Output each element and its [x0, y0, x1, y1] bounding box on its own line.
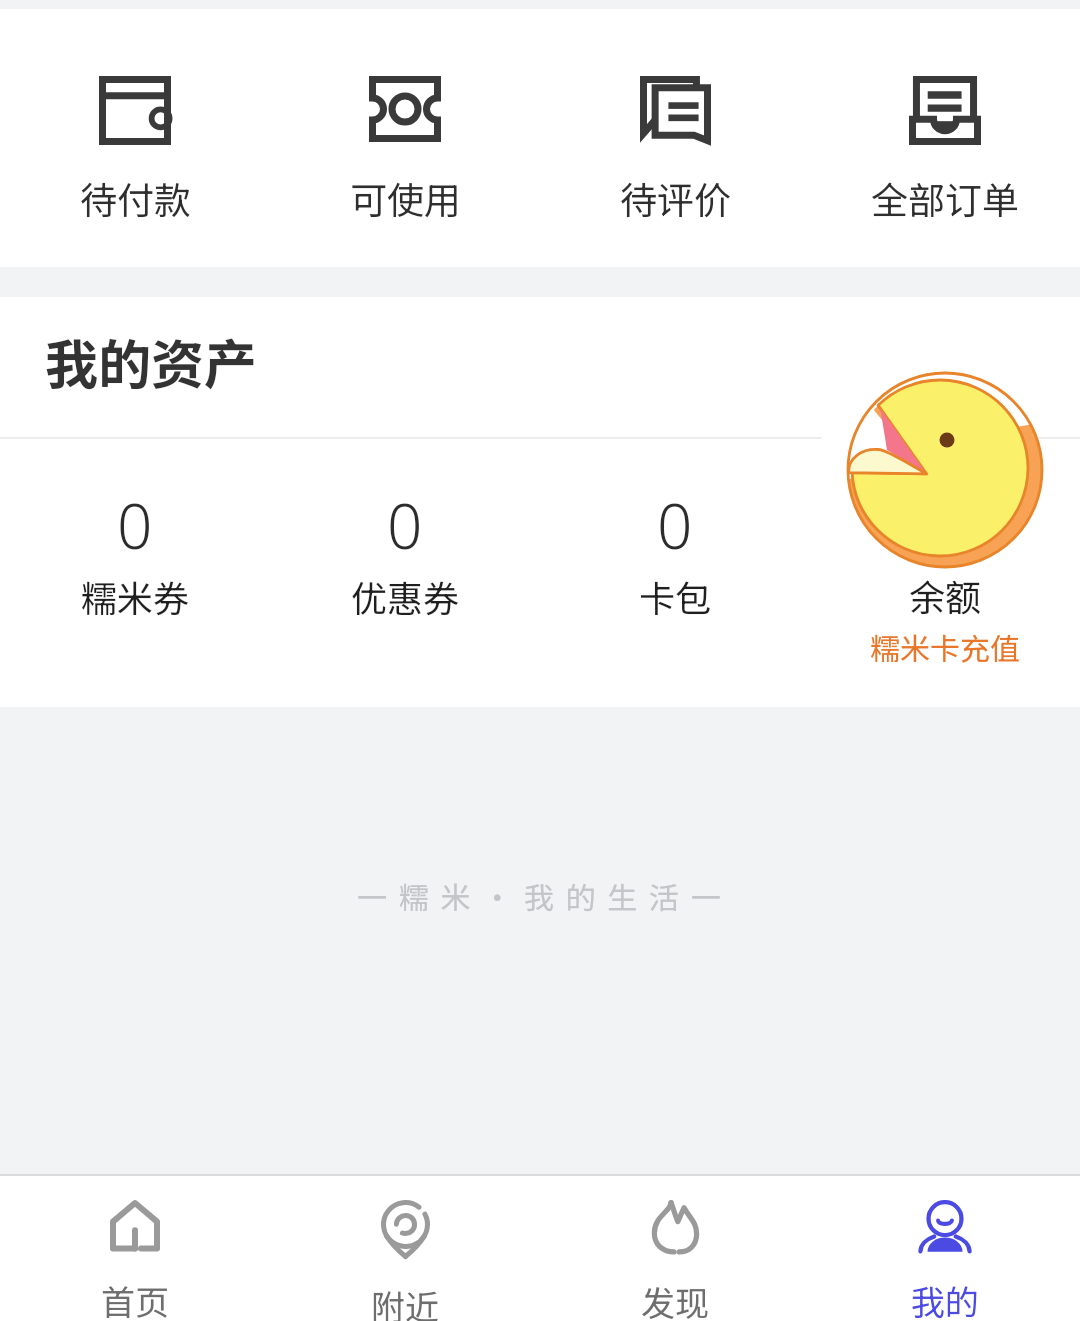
- other: 发现: [652, 1200, 699, 1255]
- button[interactable]: 余额: [810, 439, 1080, 707]
- staticText: 发现: [641, 1277, 709, 1321]
- staticText: 全部订单: [871, 171, 1019, 225]
- button[interactable]: 可使用: [270, 9, 540, 267]
- other: 首页: [110, 1200, 160, 1254]
- staticText: 首页: [101, 1276, 169, 1321]
- staticText: 我的资产: [45, 323, 257, 400]
- staticText: 我的: [911, 1276, 979, 1321]
- button[interactable]: 我的: [810, 1174, 1080, 1321]
- button[interactable]: 全部订单: [810, 9, 1080, 267]
- staticText: 0: [657, 483, 693, 567]
- other: 待付款: [99, 76, 171, 145]
- button[interactable]: 0: [270, 439, 540, 707]
- staticText: 糯米券: [81, 570, 190, 622]
- staticText: 附近: [371, 1281, 439, 1321]
- button[interactable]: 待付款: [0, 9, 270, 267]
- staticText: 可使用: [350, 171, 461, 225]
- staticText: 一 糯 米 · 我 的 生 活 一: [357, 874, 724, 917]
- button[interactable]: 附近: [270, 1174, 540, 1321]
- other: 可使用: [369, 76, 441, 142]
- staticText: 待评价: [620, 171, 731, 225]
- button[interactable]: 首页: [0, 1174, 270, 1321]
- button[interactable]: 发现: [540, 1174, 810, 1321]
- staticText: 优惠券: [351, 570, 460, 622]
- other: 我的: [918, 1200, 972, 1254]
- other: 余额: [840, 365, 1050, 575]
- staticText: 0: [117, 483, 153, 567]
- other: 全部订单: [909, 76, 981, 145]
- staticText: 待付款: [80, 171, 191, 225]
- staticText: 余额: [909, 569, 982, 621]
- other: 附近: [381, 1200, 430, 1259]
- button[interactable]: 待评价: [540, 9, 810, 267]
- other: 待评价: [640, 76, 711, 144]
- staticText: 糯米卡充值: [870, 625, 1020, 668]
- staticText: 卡包: [639, 570, 712, 622]
- button[interactable]: 0: [540, 439, 810, 707]
- button[interactable]: 0: [0, 439, 270, 707]
- staticText: 0: [387, 483, 423, 567]
